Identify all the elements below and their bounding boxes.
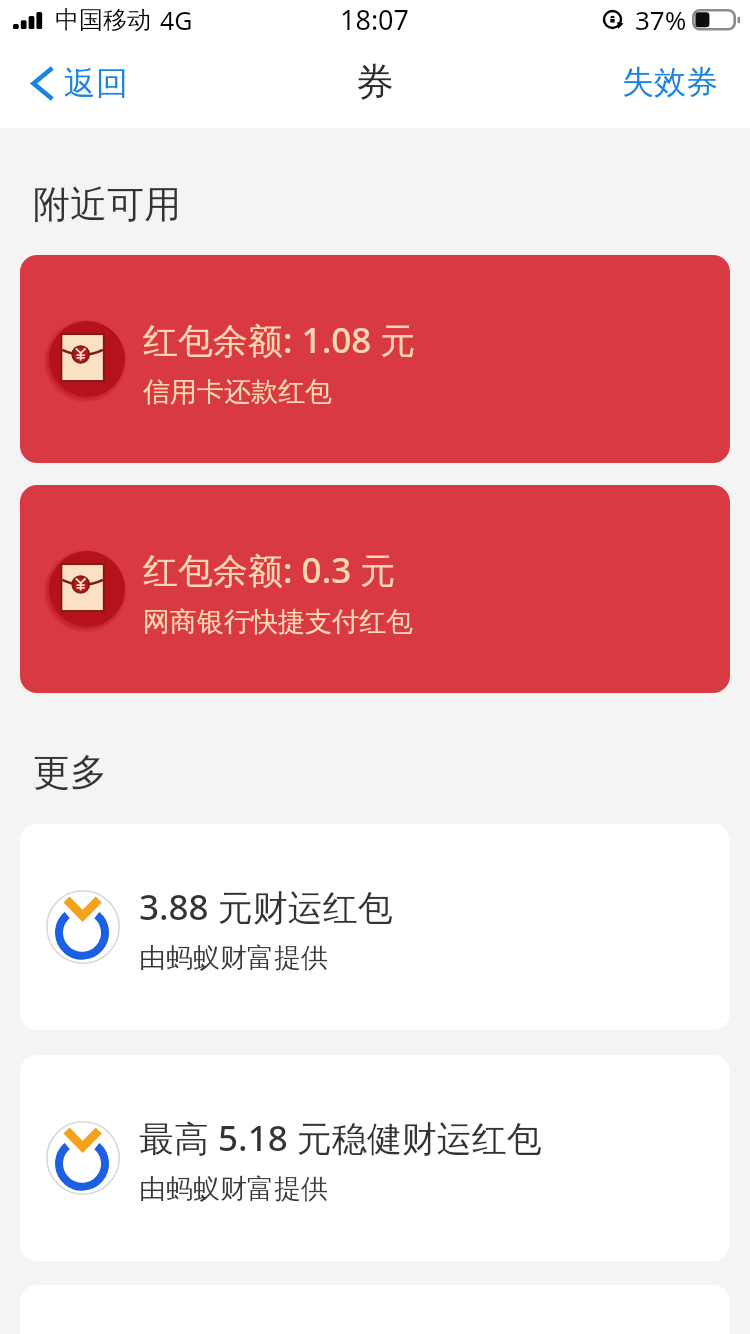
button[interactable]: 失效券 (592, 50, 750, 114)
staticText: 信用卡还款红包 (143, 375, 332, 409)
staticText: 失效券 (622, 62, 718, 102)
staticText: 3.88 元财运红包 (139, 883, 393, 931)
button[interactable]: 3.88 元财运红包 (20, 824, 730, 1030)
other: 返回 (31, 67, 53, 100)
button[interactable]: 红包余额: 0.3 元 (20, 485, 730, 693)
staticText: 更多 (33, 749, 107, 796)
staticText: 最高 5.18 元稳健财运红包 (139, 1114, 542, 1162)
staticText: 附近可用 (33, 181, 181, 228)
staticText: 4G (160, 3, 193, 37)
staticText: 37% (635, 2, 687, 37)
staticText: 网商银行快捷支付红包 (143, 605, 413, 639)
staticText: 由蚂蚁财富提供 (139, 941, 328, 975)
staticText: 返回 (64, 63, 128, 103)
button[interactable]: 最高 5.18 元稳健财运红包 (20, 1055, 730, 1261)
staticText: 中国移动 (55, 5, 151, 35)
staticText: 18:07 (340, 1, 410, 38)
staticText: 券 (356, 58, 394, 106)
button[interactable]: 红包余额: 1.08 元 (20, 255, 730, 463)
staticText: 红包余额: 0.3 元 (143, 546, 396, 594)
button[interactable]: 返回 (0, 53, 150, 113)
staticText: 由蚂蚁财富提供 (139, 1172, 328, 1206)
staticText: 红包余额: 1.08 元 (143, 316, 416, 364)
